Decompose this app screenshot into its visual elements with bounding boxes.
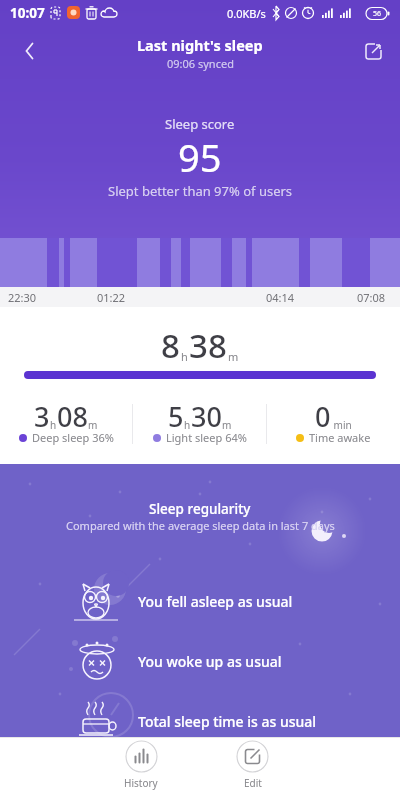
staticText: Edit — [244, 776, 262, 790]
staticText: 5 — [168, 398, 184, 435]
button[interactable]: Edit — [236, 740, 269, 790]
staticText: 09:06 synced — [167, 56, 234, 71]
staticText: History — [124, 776, 158, 790]
staticText: Total sleep time is as usual — [138, 712, 317, 731]
staticText: h — [184, 418, 191, 432]
staticText: 0.0KB/s — [227, 6, 266, 21]
staticText: 3 — [34, 398, 50, 435]
staticText: h — [181, 349, 188, 364]
staticText: Time awake — [309, 430, 371, 445]
staticText: m — [228, 349, 239, 364]
staticText: You woke up as usual — [138, 652, 282, 671]
staticText: You fell asleep as usual — [138, 592, 293, 611]
staticText: 07:08 — [357, 290, 386, 305]
staticText: min — [331, 418, 352, 432]
staticText: m — [88, 418, 98, 432]
button[interactable] — [357, 35, 389, 67]
staticText: 08 — [57, 398, 88, 435]
staticText: 0 — [315, 398, 331, 435]
button[interactable] — [14, 35, 46, 67]
staticText: Light sleep 64% — [166, 430, 247, 445]
staticText: 01:22 — [97, 290, 126, 305]
button[interactable]: History — [124, 740, 158, 790]
staticText: Slept better than 97% of users — [108, 182, 293, 200]
staticText: m — [222, 418, 232, 432]
staticText: 56 — [373, 9, 382, 19]
staticText: 30 — [191, 398, 222, 435]
staticText: 04:14 — [266, 290, 295, 305]
staticText: 95 — [178, 131, 222, 183]
staticText: Deep sleep 36% — [32, 430, 114, 445]
staticText: 10:07 — [10, 4, 45, 22]
staticText: 22:30 — [8, 290, 37, 305]
staticText: Sleep score — [165, 115, 235, 133]
staticText: Compared with the average sleep data in … — [66, 518, 335, 533]
staticText: Last night's sleep — [137, 35, 263, 55]
staticText: h — [50, 418, 57, 432]
staticText: 38 — [189, 323, 227, 368]
staticText: 8 — [161, 323, 180, 368]
staticText: Sleep regularity — [149, 500, 251, 518]
